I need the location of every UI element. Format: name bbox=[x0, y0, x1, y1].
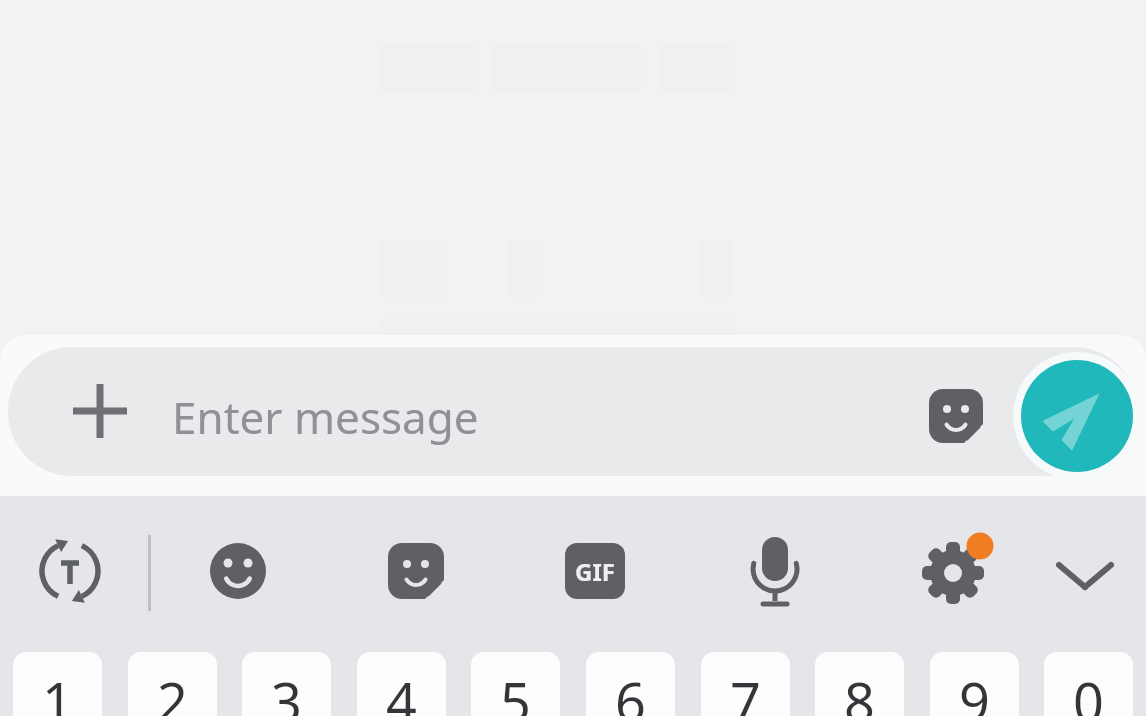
button[interactable]: 4 bbox=[357, 652, 446, 716]
button[interactable]: 6 bbox=[586, 652, 675, 716]
button[interactable]: 3 bbox=[242, 652, 331, 716]
staticText: 3 bbox=[271, 664, 302, 716]
button[interactable]: 9 bbox=[930, 652, 1019, 716]
button[interactable]: 2 bbox=[128, 652, 217, 716]
button[interactable] bbox=[1021, 360, 1133, 472]
staticText: 8 bbox=[844, 664, 875, 716]
button[interactable]: 7 bbox=[701, 652, 790, 716]
button[interactable] bbox=[376, 531, 456, 611]
button[interactable]: 0 bbox=[1044, 652, 1133, 716]
button[interactable] bbox=[198, 531, 278, 611]
staticText: 2 bbox=[157, 664, 188, 716]
button[interactable] bbox=[8, 347, 1138, 476]
staticText: 9 bbox=[959, 664, 990, 716]
button[interactable] bbox=[735, 531, 815, 611]
button[interactable]: 5 bbox=[471, 652, 560, 716]
staticText: 7 bbox=[730, 664, 761, 716]
button[interactable] bbox=[60, 371, 140, 451]
button[interactable] bbox=[917, 377, 995, 455]
staticText: 4 bbox=[386, 664, 417, 716]
staticText: GIF bbox=[575, 555, 615, 588]
staticText: Enter message bbox=[172, 387, 479, 447]
button[interactable]: 8 bbox=[815, 652, 904, 716]
button[interactable] bbox=[913, 531, 993, 611]
button[interactable] bbox=[30, 531, 110, 611]
button[interactable]: GIF bbox=[555, 531, 635, 611]
staticText: 5 bbox=[500, 664, 531, 716]
button[interactable] bbox=[1045, 535, 1125, 615]
staticText: 0 bbox=[1073, 664, 1104, 716]
staticText: 6 bbox=[615, 664, 646, 716]
button[interactable]: 1 bbox=[13, 652, 102, 716]
staticText: 1 bbox=[42, 664, 73, 716]
